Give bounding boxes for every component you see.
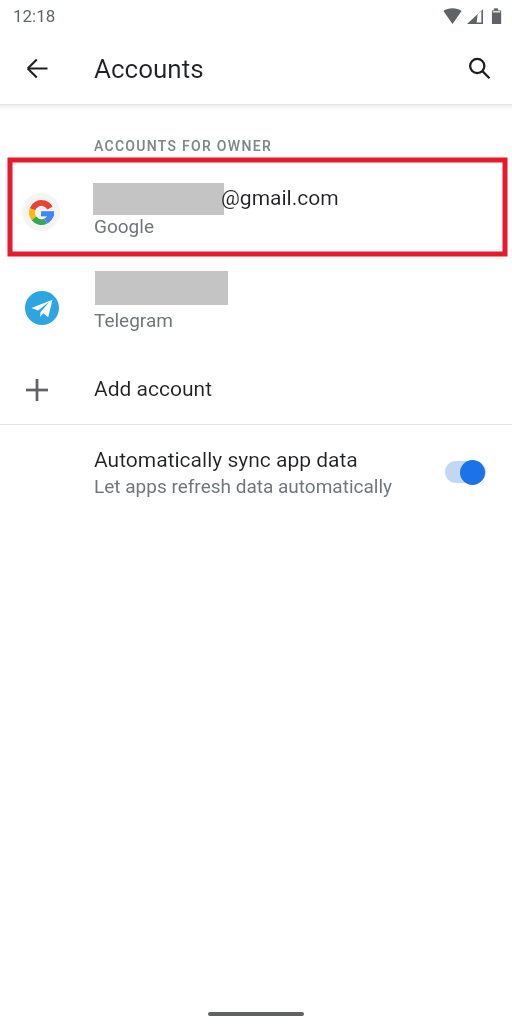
button[interactable] [0, 353, 512, 424]
staticText: 12:18 [13, 6, 56, 26]
staticText: Accounts [94, 54, 204, 84]
button[interactable]: Back [13, 44, 61, 92]
staticText: Automatically sync app data [94, 448, 358, 473]
button[interactable]: Search [455, 44, 503, 92]
staticText: ACCOUNTS FOR OWNER [94, 138, 272, 154]
button[interactable]: Automatically sync app data toggle [432, 452, 494, 492]
staticText: Google [94, 215, 154, 237]
button[interactable] [0, 253, 512, 348]
staticText: Add account [94, 377, 213, 402]
button[interactable] [0, 425, 512, 517]
staticText: Let apps refresh data automatically [94, 475, 393, 497]
staticText: @gmail.com [221, 186, 339, 211]
button[interactable] [0, 158, 512, 253]
staticText: Telegram [94, 309, 173, 331]
